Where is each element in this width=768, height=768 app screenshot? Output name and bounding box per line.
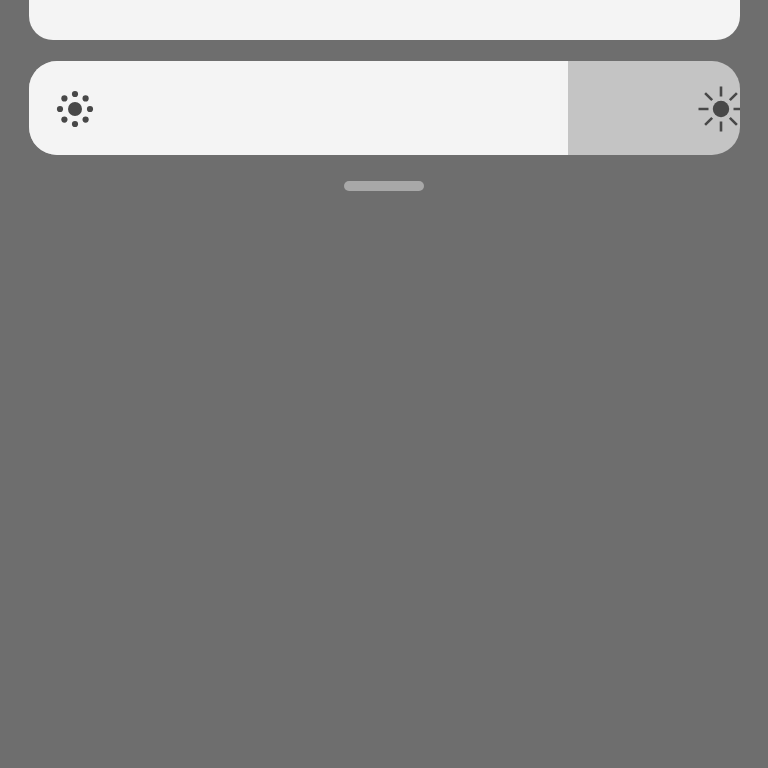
button[interactable]: Collapse quick settings	[344, 181, 424, 191]
button[interactable]: Brightness	[29, 61, 740, 155]
button[interactable]: Bugün: 415,1 MB	[29, 0, 740, 40]
